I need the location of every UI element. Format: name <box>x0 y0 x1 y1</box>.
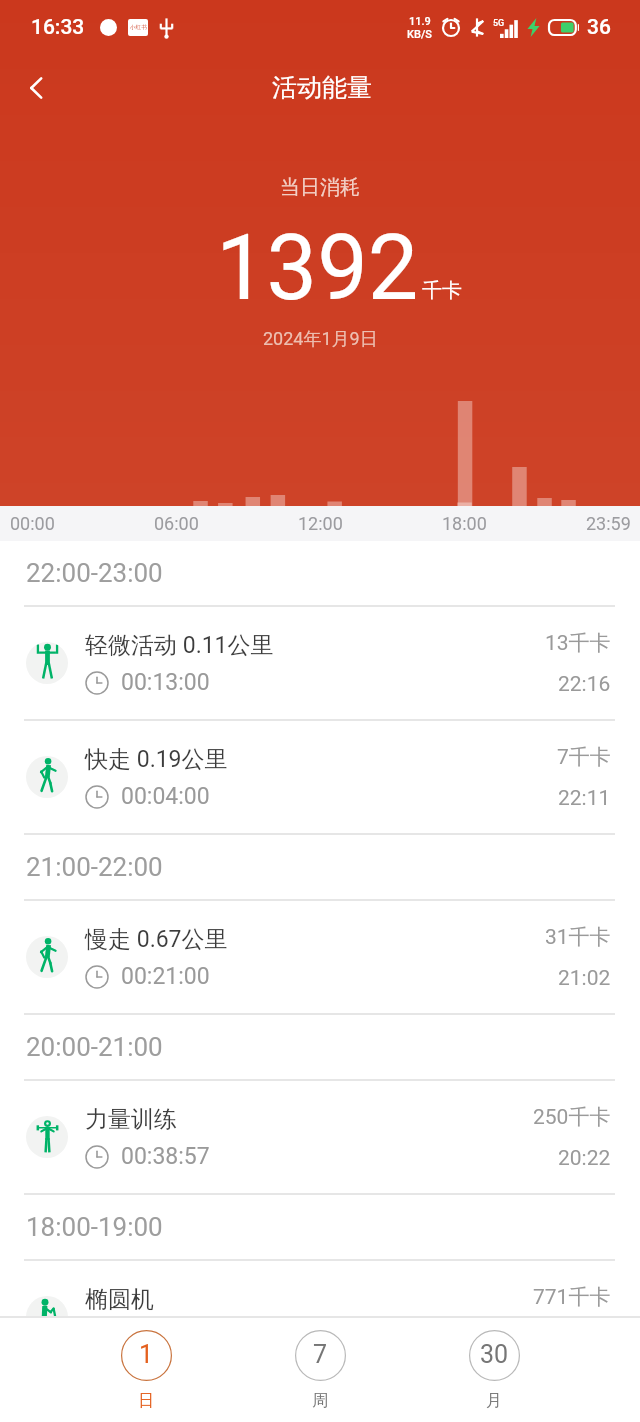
staticText: 00:21:00 <box>121 963 210 990</box>
staticText: 16:33 <box>31 15 85 40</box>
staticText: 36 <box>587 15 611 40</box>
staticText: 月 <box>486 1391 502 1411</box>
staticText: 18:00-19:00 <box>26 1212 163 1242</box>
staticText: 22:11 <box>558 786 611 811</box>
staticText: 日 <box>138 1391 154 1411</box>
staticText: 1 <box>139 1340 154 1369</box>
staticText: 周 <box>312 1391 328 1411</box>
button[interactable]: 慢走 0.67公里 <box>0 901 640 1013</box>
staticText: 1392 <box>216 216 419 321</box>
staticText: 00:38:57 <box>121 1143 210 1170</box>
staticText: 18:00 <box>442 513 487 534</box>
staticText: 23:59 <box>586 513 631 534</box>
staticText: 22:00-23:00 <box>26 558 163 588</box>
staticText: 7千卡 <box>557 744 611 770</box>
staticText: 21:02 <box>558 966 611 991</box>
staticText: 当日消耗 <box>280 175 360 200</box>
staticText: 2024年1月9日 <box>263 328 378 351</box>
button[interactable]: 7 <box>233 1330 407 1411</box>
staticText: 00:00 <box>10 513 55 534</box>
button[interactable]: 快走 0.19公里 <box>0 721 640 833</box>
button[interactable]: 力量训练 <box>0 1081 640 1193</box>
staticText: 11.9 <box>409 15 431 28</box>
staticText: 00:29:00 <box>121 1323 210 1350</box>
staticText: 31千卡 <box>545 924 611 950</box>
staticText: 771千卡 <box>533 1284 611 1310</box>
staticText: 力量训练 <box>85 1105 177 1134</box>
button[interactable]: Back <box>6 57 68 119</box>
staticText: 千卡 <box>422 278 462 303</box>
staticText: 250千卡 <box>533 1104 611 1130</box>
staticText: 活动能量 <box>272 72 372 103</box>
staticText: 慢走 0.67公里 <box>85 925 228 954</box>
staticText: 13千卡 <box>545 630 611 656</box>
staticText: 椭圆机 <box>85 1285 154 1314</box>
staticText: 7 <box>313 1340 328 1369</box>
button[interactable]: 轻微活动 0.11公里 <box>0 607 640 719</box>
staticText: 20:00-21:00 <box>26 1032 163 1062</box>
button[interactable]: 椭圆机 <box>0 1261 640 1373</box>
staticText: 5G <box>493 18 505 29</box>
staticText: 轻微活动 0.11公里 <box>85 631 274 660</box>
staticText: 20:22 <box>558 1146 611 1171</box>
staticText: 21:00-22:00 <box>26 852 163 882</box>
staticText: 00:13:00 <box>121 669 210 696</box>
staticText: 06:00 <box>154 513 199 534</box>
staticText: 12:00 <box>298 513 343 534</box>
staticText: 小红书 <box>130 24 147 31</box>
staticText: 00:04:00 <box>121 783 210 810</box>
staticText: KB/S <box>407 28 432 41</box>
staticText: 30 <box>480 1340 509 1369</box>
staticText: 快走 0.19公里 <box>85 745 228 774</box>
button[interactable]: 1 <box>59 1330 233 1411</box>
staticText: 22:16 <box>558 672 611 697</box>
button[interactable]: 30 <box>407 1330 581 1411</box>
